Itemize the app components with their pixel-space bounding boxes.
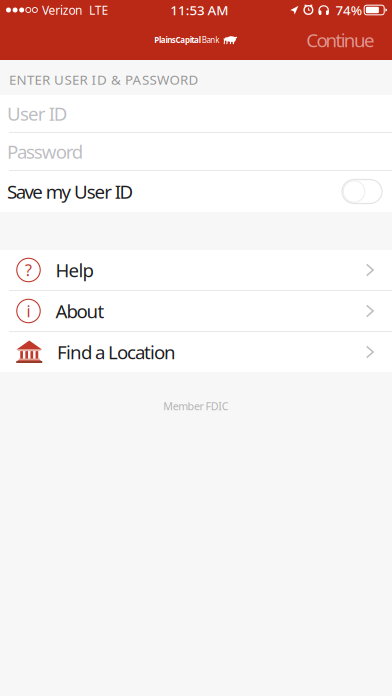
staticText: User ID: [7, 101, 68, 126]
button[interactable]: Save my User ID: [0, 171, 392, 212]
staticText: Verizon: [42, 2, 82, 18]
staticText: Bank: [202, 35, 219, 45]
button[interactable]: i: [0, 291, 392, 331]
button[interactable]: ?: [0, 250, 392, 290]
staticText: ENTER USER ID & PASSWORD: [9, 71, 198, 88]
staticText: Password: [7, 139, 83, 164]
staticText: Help: [55, 258, 93, 282]
staticText: 74%: [335, 1, 362, 19]
staticText: LTE: [89, 2, 108, 18]
staticText: PlainsCapital: [154, 35, 201, 45]
button[interactable]: Continue: [292, 20, 386, 60]
staticText: ?: [25, 259, 32, 281]
staticText: Save my User ID: [7, 179, 133, 204]
staticText: About: [55, 299, 104, 323]
staticText: 11:53 AM: [170, 1, 228, 19]
staticText: Continue: [306, 28, 375, 52]
staticText: Find a Location: [57, 340, 176, 364]
staticText: Member FDIC: [163, 399, 229, 413]
staticText: i: [26, 300, 30, 322]
button[interactable]: Find a Location: [0, 332, 392, 372]
